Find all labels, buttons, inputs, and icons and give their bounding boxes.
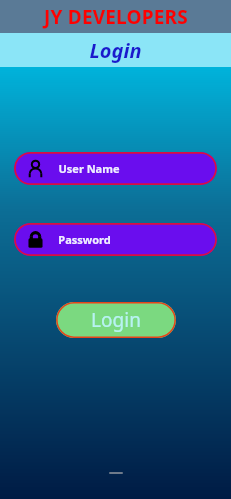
button[interactable]: Password — [14, 223, 217, 256]
button[interactable]: User — [14, 152, 217, 185]
other: User — [26, 159, 45, 178]
staticText: Login — [89, 37, 142, 64]
staticText: Login — [91, 307, 141, 333]
staticText: User Name — [58, 161, 120, 176]
staticText: JY DEVELOPERS — [44, 4, 188, 30]
button[interactable]: Login — [56, 302, 176, 338]
button[interactable]: JY DEVELOPERS — [0, 0, 231, 33]
other: Password — [26, 230, 45, 249]
staticText: Password — [58, 232, 111, 247]
